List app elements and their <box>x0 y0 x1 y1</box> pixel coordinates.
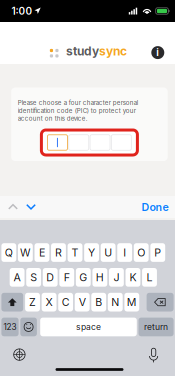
staticText: K <box>129 271 136 284</box>
button[interactable]: T <box>68 243 82 262</box>
staticText: Done <box>141 200 168 213</box>
button[interactable]: return <box>138 318 174 336</box>
staticText: i <box>156 47 159 58</box>
button[interactable]: E <box>34 243 49 262</box>
button[interactable]: W <box>18 243 33 262</box>
button[interactable]: Delete <box>147 293 174 311</box>
staticText: L <box>146 271 152 284</box>
staticText: J <box>113 271 119 284</box>
button[interactable]: J <box>109 268 124 287</box>
button[interactable]: Y <box>84 243 99 262</box>
button[interactable]: X <box>42 293 56 311</box>
staticText: sync <box>99 44 127 58</box>
staticText: O <box>137 246 145 259</box>
staticText: C <box>62 296 70 309</box>
staticText: D <box>46 271 54 284</box>
button[interactable]: F <box>59 268 74 287</box>
button[interactable]: V <box>75 293 90 311</box>
staticText: G <box>79 271 87 284</box>
button[interactable]: Done <box>134 195 175 218</box>
staticText: B <box>95 296 102 309</box>
button[interactable]: C <box>58 293 73 311</box>
button[interactable]: G <box>76 268 91 287</box>
button[interactable]: Q <box>1 243 16 262</box>
staticText: S <box>30 271 37 284</box>
button[interactable]: Dictate <box>141 343 167 367</box>
button[interactable]: Emoji <box>20 318 37 336</box>
button[interactable]: Previous field <box>4 200 22 214</box>
staticText: E <box>39 246 45 259</box>
staticText: V <box>79 296 86 309</box>
button[interactable]: K <box>125 268 140 287</box>
staticText: M <box>127 296 137 309</box>
button[interactable]: N <box>108 293 123 311</box>
staticText: Q <box>5 246 13 259</box>
staticText: A <box>14 271 21 284</box>
button[interactable]: Next field <box>22 200 40 214</box>
button[interactable]: U <box>101 243 115 262</box>
staticText: I <box>123 246 126 259</box>
staticText: W <box>20 246 31 259</box>
staticText: N <box>111 296 119 309</box>
button[interactable]: M <box>124 293 139 311</box>
button[interactable]: space <box>40 318 137 336</box>
button[interactable]: Information <box>146 41 170 65</box>
staticText: U <box>104 246 112 259</box>
staticText: return <box>144 322 168 332</box>
staticText: 123 <box>3 322 16 332</box>
button[interactable]: B <box>91 293 106 311</box>
button[interactable]: Next keyboard <box>6 343 32 367</box>
staticText: F <box>64 271 70 284</box>
staticText: space <box>76 322 101 332</box>
button[interactable]: Shift <box>1 293 23 311</box>
button[interactable]: I <box>117 243 132 262</box>
staticText: R <box>55 246 62 259</box>
staticText: Y <box>88 246 95 259</box>
staticText: 1:00 <box>11 5 32 17</box>
button[interactable]: A <box>10 268 24 287</box>
staticText: Please choose a four character personal … <box>18 99 138 122</box>
staticText: T <box>71 246 78 259</box>
staticText: X <box>46 296 53 309</box>
staticText: H <box>96 271 104 284</box>
button[interactable]: S <box>26 268 41 287</box>
button[interactable]: P <box>150 243 165 262</box>
staticText: P <box>154 246 161 259</box>
staticText: Z <box>29 296 36 309</box>
button[interactable]: H <box>92 268 107 287</box>
button[interactable]: D <box>43 268 58 287</box>
staticText: study <box>66 44 99 58</box>
button[interactable]: R <box>51 243 66 262</box>
button[interactable]: 123 <box>1 318 19 336</box>
button[interactable]: L <box>142 268 157 287</box>
button[interactable]: Z <box>25 293 40 311</box>
button[interactable]: O <box>134 243 149 262</box>
